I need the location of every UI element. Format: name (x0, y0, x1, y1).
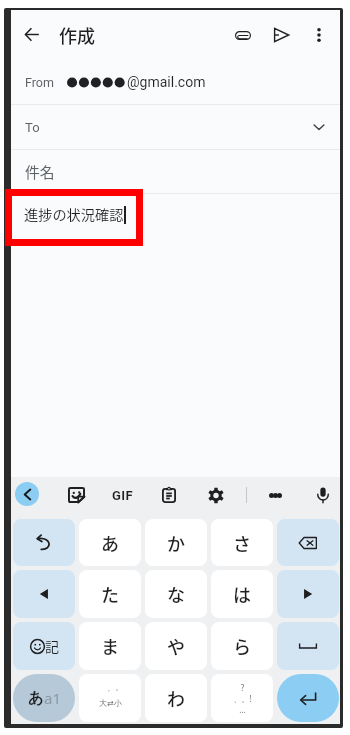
button[interactable]: さ (211, 519, 273, 566)
button[interactable]: emoji (13, 622, 75, 670)
button[interactable]: Voice input (306, 477, 340, 519)
staticText: ? 、。! … (233, 682, 252, 715)
staticText: ゛゜ 大⇄小 (99, 688, 122, 708)
button[interactable]: space (277, 622, 339, 670)
button[interactable]: To (11, 105, 340, 150)
button[interactable]: From (11, 59, 340, 105)
staticText: わ (167, 685, 185, 711)
button[interactable]: Attach file (224, 11, 262, 59)
button[interactable]: ま (79, 622, 141, 670)
button[interactable]: punct (211, 674, 273, 722)
staticText: From (25, 75, 54, 90)
button[interactable]: Clipboard (152, 477, 186, 519)
button[interactable]: Collapse toolbar (15, 482, 39, 506)
staticText: な (167, 581, 185, 607)
button[interactable]: か (145, 519, 207, 566)
button[interactable]: や (145, 622, 207, 670)
staticText: あ (28, 689, 44, 708)
button[interactable]: mode (13, 674, 75, 722)
button[interactable]: あ (79, 519, 141, 566)
button[interactable]: right (277, 570, 339, 618)
staticText: 記 (45, 636, 59, 656)
button[interactable]: enter (277, 674, 339, 722)
staticText: 作成 (59, 22, 95, 48)
button[interactable]: backspace (277, 519, 339, 566)
staticText: ま (101, 633, 119, 659)
button[interactable]: わ (145, 674, 207, 722)
button[interactable]: Stickers (59, 477, 93, 519)
staticText: To (25, 120, 40, 135)
staticText: や (167, 633, 185, 659)
button[interactable]: More options (300, 11, 338, 59)
staticText: 進捗の状況確認 (24, 204, 124, 225)
button[interactable]: Send (262, 11, 300, 59)
button[interactable]: な (145, 570, 207, 618)
button[interactable]: 進捗の状況確認 (11, 194, 340, 477)
staticText: か (167, 530, 185, 556)
button[interactable]: undo (13, 519, 75, 566)
button[interactable]: ら (211, 622, 273, 670)
staticText: あ (101, 530, 119, 556)
staticText: は (233, 581, 251, 607)
button[interactable]: た (79, 570, 141, 618)
button[interactable]: left (13, 570, 75, 618)
staticText: GIF (112, 488, 133, 503)
staticText: さ (233, 530, 251, 556)
button[interactable]: は (211, 570, 273, 618)
button[interactable]: 件名 (11, 150, 340, 194)
staticText: 件名 (25, 161, 55, 182)
button[interactable]: Back (11, 11, 53, 59)
button[interactable]: GIF (105, 477, 139, 519)
button[interactable]: Settings (199, 477, 233, 519)
staticText: た (101, 581, 119, 607)
button[interactable]: dakuten (79, 674, 141, 722)
staticText: ら (233, 633, 251, 659)
staticText: a1 (44, 688, 61, 708)
staticText: @gmail.com (127, 74, 206, 90)
button[interactable]: More options (258, 477, 292, 519)
